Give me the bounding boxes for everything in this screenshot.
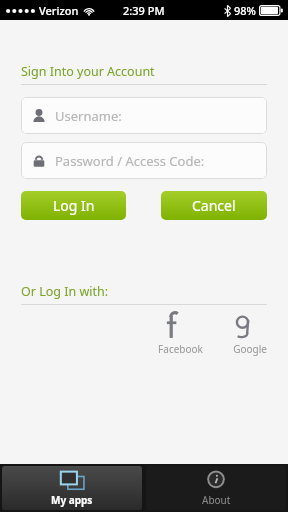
staticText: Cancel: [192, 196, 236, 215]
button[interactable]: About: [146, 466, 286, 510]
staticText: Password / Access Code:: [55, 152, 205, 170]
staticText: 98%: [234, 3, 256, 18]
staticText: Log In: [53, 196, 95, 215]
staticText: Facebook: [158, 342, 203, 356]
button[interactable]: Cancel: [161, 191, 267, 220]
button[interactable]: My apps: [2, 466, 142, 510]
button[interactable]: Log in with Google: [219, 311, 281, 356]
staticText: Or Log In with:: [21, 283, 109, 300]
staticText: Username:: [55, 107, 122, 125]
staticText: About: [202, 493, 231, 507]
button[interactable]: Log In: [21, 191, 126, 220]
staticText: Verizon: [39, 3, 79, 18]
button[interactable]: Password / Access Code:: [21, 142, 267, 179]
staticText: 2:39 PM: [123, 3, 165, 18]
button[interactable]: Username:: [21, 97, 267, 134]
button[interactable]: Log in with Facebook: [149, 311, 211, 356]
staticText: My apps: [51, 493, 93, 507]
staticText: Google: [233, 342, 267, 356]
staticText: Sign Into your Account: [21, 63, 155, 80]
